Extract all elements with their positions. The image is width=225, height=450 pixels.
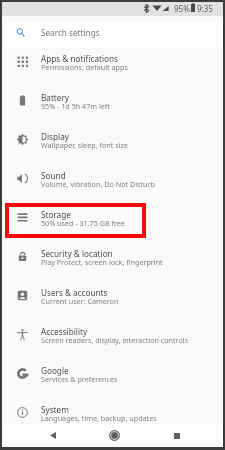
staticText: Wallpaper, sleep, font size	[41, 140, 128, 150]
button[interactable]: Storage	[2, 204, 223, 243]
staticText: Screen readers, display, interaction con…	[41, 335, 189, 345]
staticText: Users & accounts	[41, 287, 108, 298]
staticText: Storage	[41, 209, 71, 220]
staticText: 50% used - 31.75 GB free	[41, 218, 125, 228]
staticText: System	[41, 404, 69, 415]
button[interactable]: Sound	[2, 165, 223, 204]
staticText: Current user: Cameron	[41, 296, 119, 306]
staticText: 95% - 1d 5h 47m left	[41, 101, 110, 111]
button[interactable]: Battery	[2, 87, 223, 126]
button[interactable]: Users & accounts	[2, 282, 223, 321]
button[interactable]: Google	[2, 360, 223, 399]
button[interactable]: Home	[93, 424, 136, 447]
staticText: 95%	[174, 3, 190, 14]
staticText: 9:35	[197, 3, 213, 14]
staticText: Sound	[41, 170, 66, 181]
button[interactable]: Apps & notifications	[2, 48, 223, 87]
staticText: Services & preferences	[41, 374, 118, 384]
button[interactable]: System	[2, 399, 223, 438]
button[interactable]: Search settings	[6, 22, 223, 47]
button[interactable]: Recent apps	[155, 424, 198, 447]
staticText: Apps & notifications	[41, 53, 119, 64]
staticText: Volume, vibration, Do Not Disturb	[41, 179, 155, 189]
button[interactable]: Back	[31, 424, 74, 447]
staticText: Accessibility	[41, 326, 88, 337]
staticText: Languages, time, backup, updates	[41, 413, 157, 423]
staticText: Search settings	[41, 27, 100, 38]
button[interactable]: Accessibility	[2, 321, 223, 360]
staticText: Permissions, default apps	[41, 62, 128, 72]
staticText: Security & location	[41, 248, 113, 259]
staticText: Battery	[41, 92, 70, 103]
staticText: Play Protect, screen lock, fingerprint	[41, 257, 163, 267]
button[interactable]: Security & location	[2, 243, 223, 282]
button[interactable]: Display	[2, 126, 223, 165]
staticText: Display	[41, 131, 69, 142]
staticText: Google	[41, 365, 69, 376]
